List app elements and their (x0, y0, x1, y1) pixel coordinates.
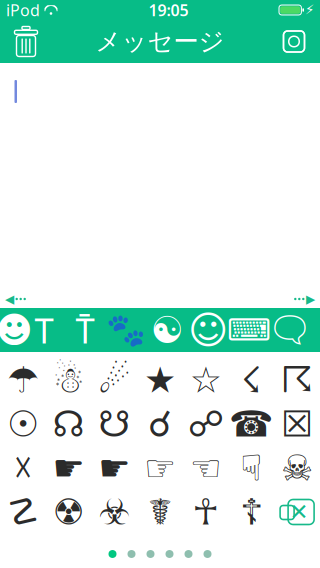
button[interactable]: Insert ★ (137, 358, 183, 402)
staticText: ☌ (148, 404, 172, 444)
button[interactable]: More categories (275, 290, 320, 308)
button[interactable]: Category ☺ (187, 308, 228, 352)
staticText: ★ (144, 360, 176, 400)
button[interactable]: Insert ☜ (183, 446, 229, 490)
button[interactable]: Insert ☓ (0, 446, 46, 490)
button[interactable]: Insert ☋ (91, 402, 137, 446)
button[interactable]: Category T̄ (64, 308, 105, 352)
staticText: 🗨 (267, 309, 313, 350)
button[interactable]: Insert ☈ (274, 358, 320, 402)
staticText: ☞ (144, 448, 176, 488)
staticText: ☎ (229, 404, 274, 444)
button[interactable]: Insert ☞ (137, 446, 183, 490)
staticText: ☣ (98, 492, 130, 532)
button[interactable]: Category 🐾 (105, 308, 146, 352)
staticText: ☤ (148, 492, 172, 532)
staticText: ☢ (53, 492, 85, 532)
button[interactable]: Delete all (0, 20, 52, 63)
button[interactable]: Insert ☟ (229, 446, 274, 490)
button[interactable]: Category 🗨 (269, 308, 310, 352)
button[interactable]: Insert ☄ (91, 358, 137, 402)
staticText: ◀ (5, 292, 14, 306)
button[interactable]: Previous category (9, 308, 23, 352)
staticText: ☓ (13, 448, 32, 488)
button[interactable]: Insert ☊ (46, 402, 91, 446)
button[interactable]: Insert ☆ (183, 358, 229, 402)
button[interactable]: Insert ☉ (0, 402, 46, 446)
staticText: 🐾 (106, 312, 146, 348)
button[interactable]: Category ⌨ (228, 308, 269, 352)
button[interactable]: Insert ☥ (183, 490, 229, 534)
staticText: 19:05 (148, 0, 188, 21)
button[interactable]: Insert ☎ (229, 402, 274, 446)
staticText: ☜ (190, 448, 222, 488)
button[interactable]: Insert ☃ (46, 358, 91, 402)
staticText: ☠ (281, 448, 313, 488)
button[interactable]: Insert ☂ (0, 358, 46, 402)
staticText: ☈ (281, 360, 313, 400)
staticText: ☊ (53, 404, 85, 444)
staticText: ☡ (7, 492, 39, 532)
button[interactable]: Settings (268, 20, 320, 63)
staticText: ☛ (53, 448, 85, 488)
button[interactable]: Insert ☇ (229, 358, 274, 402)
staticText: ⌨ (227, 313, 271, 347)
button[interactable]: Insert ☠ (274, 446, 320, 490)
button[interactable]: Insert ☒ (274, 402, 320, 446)
staticText: ☦ (240, 492, 263, 532)
staticText: ☆ (190, 360, 222, 400)
staticText: ☒ (281, 404, 313, 444)
staticText: ▶ (306, 292, 315, 306)
button[interactable]: Insert ☍ (183, 402, 229, 446)
staticText: ☟ (240, 448, 262, 488)
staticText: ☄ (98, 360, 130, 400)
staticText: ☥ (192, 492, 219, 532)
staticText: ☂ (7, 360, 39, 400)
button[interactable]: Category T (23, 308, 64, 352)
button[interactable]: Previous categories (0, 290, 45, 308)
staticText: ☻ (0, 310, 33, 350)
staticText: ☍ (188, 404, 224, 444)
staticText: ☯ (150, 309, 183, 351)
button[interactable]: Insert ☛ (91, 446, 137, 490)
button[interactable]: Insert ☌ (137, 402, 183, 446)
button[interactable]: Insert ☦ (229, 490, 274, 534)
staticText: ☺ (188, 308, 228, 352)
staticText: T̄ (75, 307, 94, 353)
staticText: ☋ (98, 404, 130, 444)
staticText: メッセージ (95, 26, 224, 57)
button[interactable]: Delete (274, 490, 320, 534)
button[interactable]: Insert ☢ (46, 490, 91, 534)
staticText: ☃ (53, 360, 85, 400)
button[interactable]: Insert ☤ (137, 490, 183, 534)
staticText: iPod (6, 0, 40, 21)
button[interactable]: Category ☯ (146, 308, 187, 352)
staticText: ☇ (241, 360, 262, 400)
staticText: ⚡︎ (305, 2, 314, 17)
button[interactable]: Insert ☛ (46, 446, 91, 490)
staticText: ☉ (7, 404, 39, 444)
staticText: ☛ (98, 448, 130, 488)
button[interactable]: Insert ☣ (91, 490, 137, 534)
button[interactable]: Insert ☡ (0, 490, 46, 534)
staticText: T (34, 307, 53, 353)
staticText: ✕ (290, 499, 309, 525)
